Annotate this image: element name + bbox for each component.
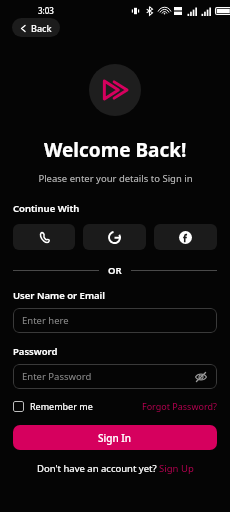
staticText: Back [31, 22, 52, 34]
button[interactable]: Remember me [13, 400, 93, 412]
staticText: Enter here [22, 314, 69, 327]
staticText: Enter Password [22, 370, 92, 383]
button[interactable]: Continue with phone [13, 224, 75, 250]
button[interactable]: Continue with Facebook [154, 224, 217, 250]
staticText: OR [108, 264, 122, 277]
button[interactable]: Toggle password visibility [194, 370, 208, 384]
staticText: Continue With [13, 202, 80, 215]
staticText: Welcome Back! [44, 137, 187, 163]
staticText: Forgot Password? [142, 400, 217, 412]
button[interactable]: Enter Password [13, 364, 217, 389]
button[interactable]: Enter here [13, 308, 217, 333]
staticText: 3:03 [38, 5, 54, 16]
staticText: Please enter your details to Sign in [38, 172, 193, 185]
staticText: Don't have an account yet? Sign Up [37, 462, 194, 475]
staticText: User Name or Email [13, 289, 105, 302]
staticText: Remember me [30, 400, 93, 412]
button[interactable]: Forgot Password? [142, 400, 217, 412]
button[interactable]: Don't have an account yet? Sign Up [37, 462, 194, 475]
staticText: Sign In [98, 431, 132, 445]
button[interactable]: Sign In [13, 425, 217, 450]
staticText: Password [13, 345, 58, 358]
button[interactable]: Continue with Google [83, 224, 146, 250]
button[interactable]: Back [12, 18, 60, 37]
